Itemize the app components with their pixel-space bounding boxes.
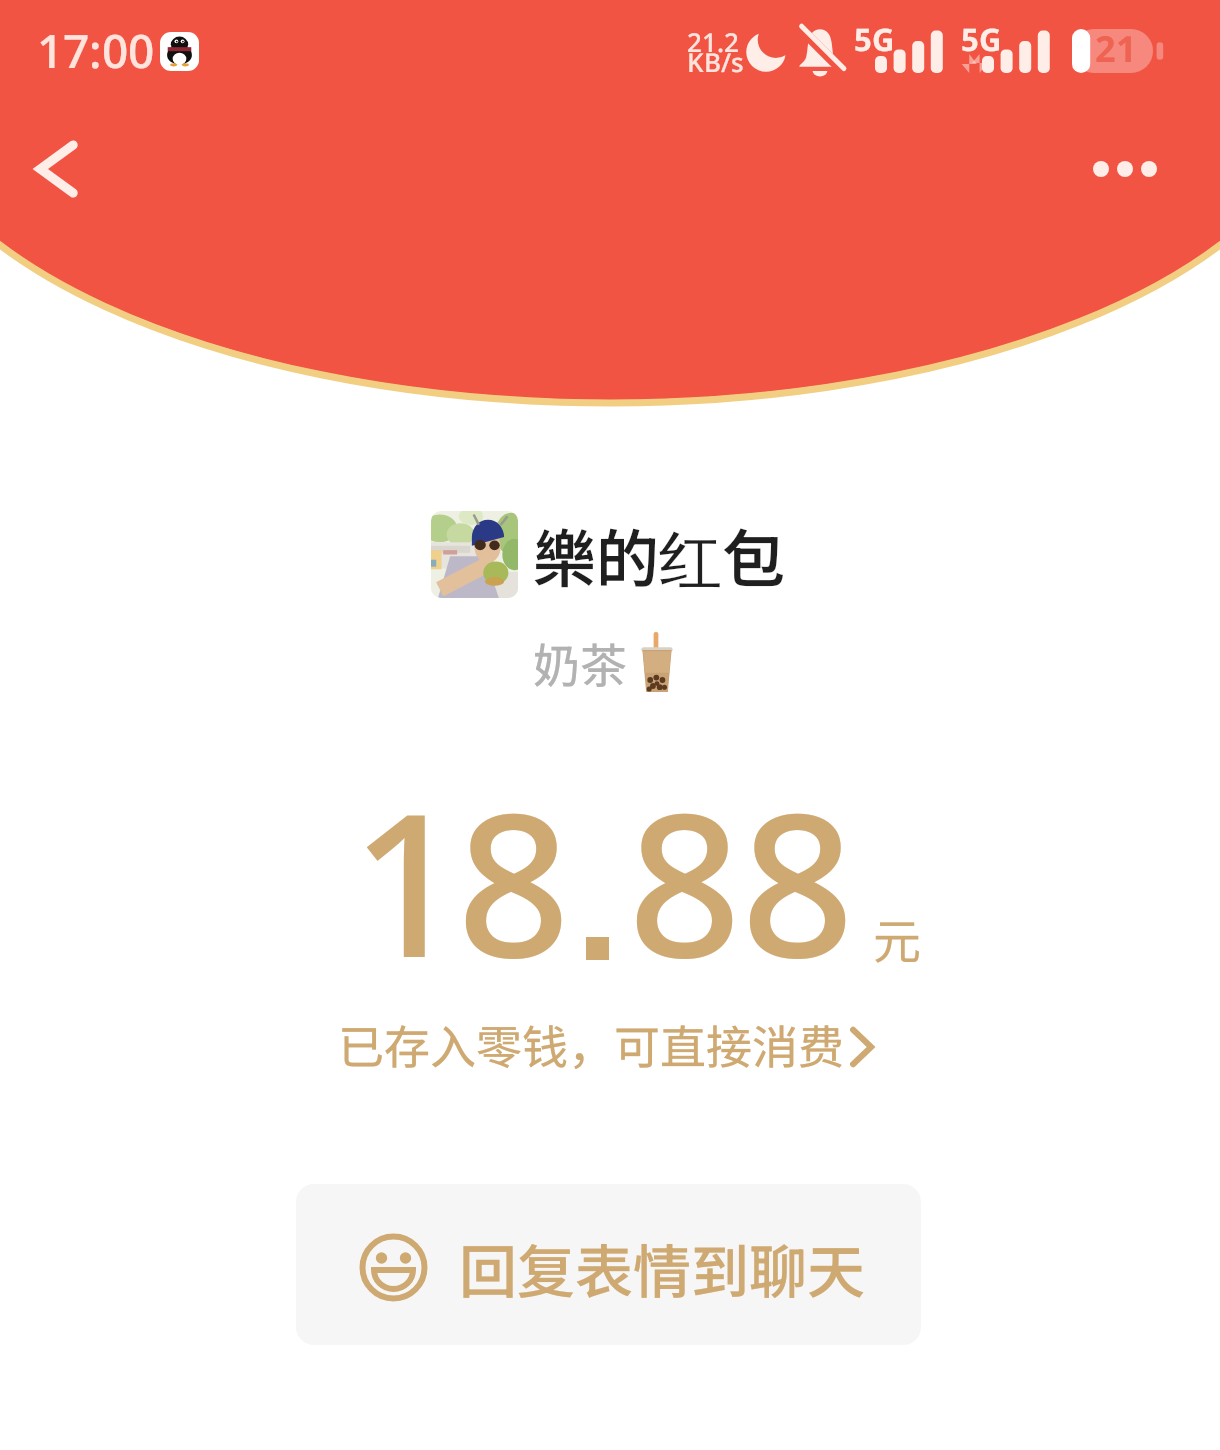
button[interactable]: Back [14,126,100,212]
button[interactable]: Sender avatar [431,511,518,598]
button[interactable]: More options [1082,126,1168,212]
button[interactable] [300,1015,920,1079]
button[interactable] [296,1184,921,1345]
